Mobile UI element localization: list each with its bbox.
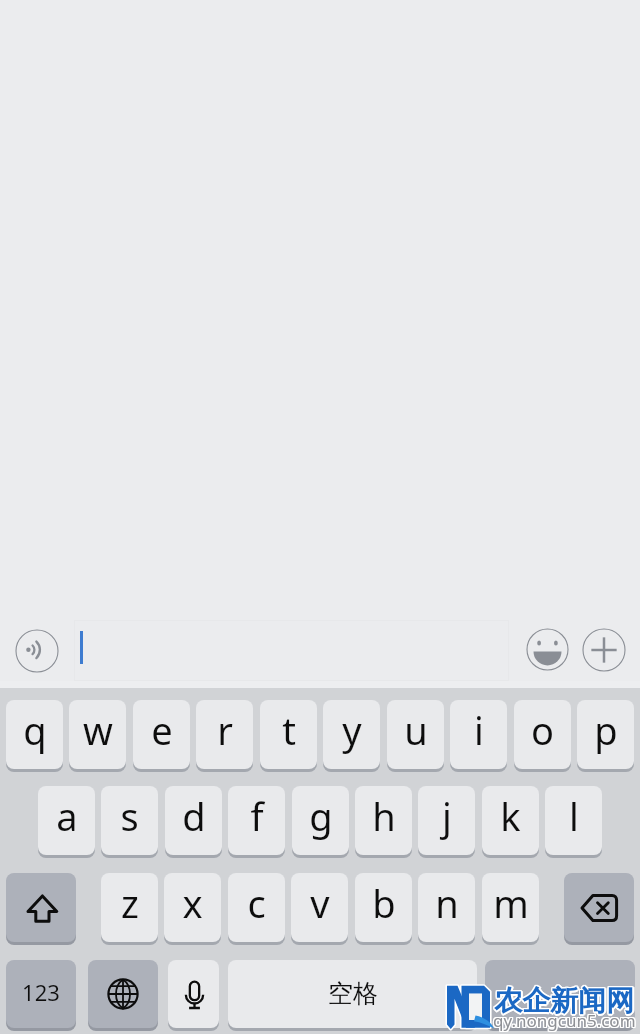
- staticText: qy.nongcun5.com: [493, 1010, 636, 1033]
- button[interactable]: n: [418, 873, 475, 942]
- staticText: j: [442, 790, 452, 842]
- staticText: 农企新闻网: [494, 985, 634, 1020]
- button[interactable]: Backspace: [564, 873, 634, 942]
- button[interactable]: [74, 620, 509, 681]
- staticText: qy.nongcun5.com: [492, 1010, 635, 1033]
- button[interactable]: s: [101, 786, 158, 855]
- button[interactable]: 123: [6, 960, 76, 1028]
- staticText: r: [217, 704, 233, 756]
- button[interactable]: Voice message: [15, 629, 59, 673]
- staticText: c: [247, 877, 266, 929]
- button[interactable]: Switch keyboard: [88, 960, 158, 1028]
- staticText: 农企新闻网: [495, 982, 635, 1017]
- button[interactable]: z: [101, 873, 158, 942]
- button[interactable]: c: [228, 873, 285, 942]
- staticText: qy.nongcun5.com: [492, 1008, 635, 1031]
- button[interactable]: d: [165, 786, 222, 855]
- button[interactable]: l: [545, 786, 602, 855]
- staticText: qy.nongcun5.com: [492, 1009, 635, 1032]
- button[interactable]: m: [482, 873, 539, 942]
- button[interactable]: [485, 960, 635, 1028]
- staticText: i: [474, 704, 484, 756]
- staticText: y: [342, 704, 362, 756]
- button[interactable]: b: [355, 873, 412, 942]
- staticText: qy.nongcun5.com: [493, 1008, 636, 1031]
- staticText: s: [120, 790, 139, 842]
- button[interactable]: j: [418, 786, 475, 855]
- button[interactable]: w: [69, 700, 126, 769]
- staticText: o: [531, 704, 554, 756]
- staticText: 农企新闻网: [494, 982, 634, 1017]
- staticText: 空格: [328, 978, 378, 1009]
- button[interactable]: p: [577, 700, 634, 769]
- staticText: u: [404, 704, 428, 756]
- button[interactable]: u: [387, 700, 444, 769]
- button[interactable]: o: [514, 700, 571, 769]
- button[interactable]: h: [355, 786, 412, 855]
- staticText: w: [83, 704, 113, 756]
- staticText: e: [151, 704, 173, 756]
- button[interactable]: e: [133, 700, 190, 769]
- staticText: m: [493, 877, 529, 929]
- button[interactable]: t: [260, 700, 317, 769]
- button[interactable]: x: [164, 873, 221, 942]
- staticText: a: [56, 790, 78, 842]
- button[interactable]: r: [196, 700, 253, 769]
- button[interactable]: Emoji: [526, 628, 569, 671]
- button[interactable]: a: [38, 786, 95, 855]
- staticText: q: [23, 704, 47, 756]
- staticText: 农企新闻网: [494, 983, 634, 1018]
- staticText: v: [310, 877, 330, 929]
- staticText: qy.nongcun5.com: [494, 1009, 637, 1032]
- staticText: qy.nongcun5.com: [494, 1010, 637, 1033]
- button[interactable]: Shift: [6, 873, 76, 942]
- button[interactable]: More: [582, 628, 626, 672]
- staticText: h: [372, 790, 396, 842]
- staticText: 农企新闻网: [495, 984, 635, 1019]
- staticText: b: [372, 877, 396, 929]
- staticText: f: [250, 790, 264, 842]
- staticText: 123: [22, 977, 60, 1007]
- staticText: 农企新闻网: [493, 984, 633, 1019]
- staticText: 农企新闻网: [493, 983, 633, 1018]
- button[interactable]: q: [6, 700, 63, 769]
- staticText: g: [309, 790, 333, 842]
- button[interactable]: i: [450, 700, 507, 769]
- staticText: qy.nongcun5.com: [494, 1008, 637, 1031]
- staticText: k: [500, 790, 521, 842]
- staticText: n: [435, 877, 459, 929]
- staticText: qy.nongcun5.com: [493, 1009, 636, 1032]
- button[interactable]: f: [228, 786, 285, 855]
- staticText: l: [569, 790, 579, 842]
- staticText: 农企新闻网: [493, 982, 633, 1017]
- staticText: t: [282, 704, 296, 756]
- button[interactable]: k: [482, 786, 539, 855]
- button[interactable]: Voice typing: [168, 960, 219, 1028]
- staticText: d: [182, 790, 206, 842]
- staticText: z: [121, 877, 139, 929]
- staticText: x: [182, 877, 203, 929]
- staticText: p: [594, 704, 618, 756]
- button[interactable]: y: [323, 700, 380, 769]
- button[interactable]: 空格: [228, 960, 477, 1028]
- button[interactable]: g: [292, 786, 349, 855]
- button[interactable]: v: [291, 873, 348, 942]
- staticText: 农企新闻网: [496, 983, 636, 1018]
